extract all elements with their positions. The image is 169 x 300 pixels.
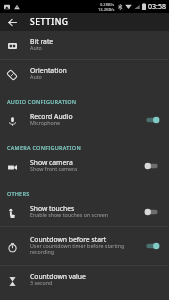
button[interactable]: Orientation bbox=[0, 60, 169, 88]
staticText: Auto bbox=[30, 44, 42, 51]
staticText: Show touches bbox=[30, 204, 75, 213]
button[interactable]: Bit rate bbox=[0, 31, 169, 59]
button[interactable]: Show touches bbox=[0, 198, 169, 226]
staticText: Show camera bbox=[30, 158, 73, 167]
staticText: 03:58 bbox=[148, 2, 166, 12]
staticText: Orientation bbox=[30, 66, 67, 75]
staticText: Show front camera bbox=[30, 165, 77, 172]
staticText: Countdown value bbox=[30, 272, 86, 281]
staticText: Enable show touches on screen bbox=[30, 211, 109, 218]
staticText: Countdown before start bbox=[30, 235, 107, 244]
button[interactable]: Record Audio bbox=[0, 106, 169, 134]
staticText: Record Audio bbox=[30, 112, 73, 121]
staticText: OTHERS bbox=[7, 190, 30, 197]
staticText: CAMERA CONFIGURATION bbox=[7, 144, 81, 151]
staticText: AUDIO CONFIGURATION bbox=[7, 98, 77, 105]
button[interactable]: Countdown before start bbox=[0, 227, 169, 265]
staticText: 0.2KB/s bbox=[100, 2, 115, 7]
staticText: 3 second bbox=[30, 279, 53, 286]
button[interactable]: Back bbox=[0, 13, 25, 31]
staticText: SETTING bbox=[30, 16, 69, 28]
button[interactable]: Show camera bbox=[0, 152, 169, 180]
staticText: Auto bbox=[30, 73, 42, 80]
button[interactable]: Countdown value bbox=[0, 266, 169, 294]
staticText: Microphone bbox=[30, 119, 60, 126]
staticText: User countdown timer before starting rec… bbox=[30, 242, 142, 256]
staticText: Bit rate bbox=[30, 37, 54, 46]
staticText: 13.2KB/s bbox=[98, 7, 115, 12]
